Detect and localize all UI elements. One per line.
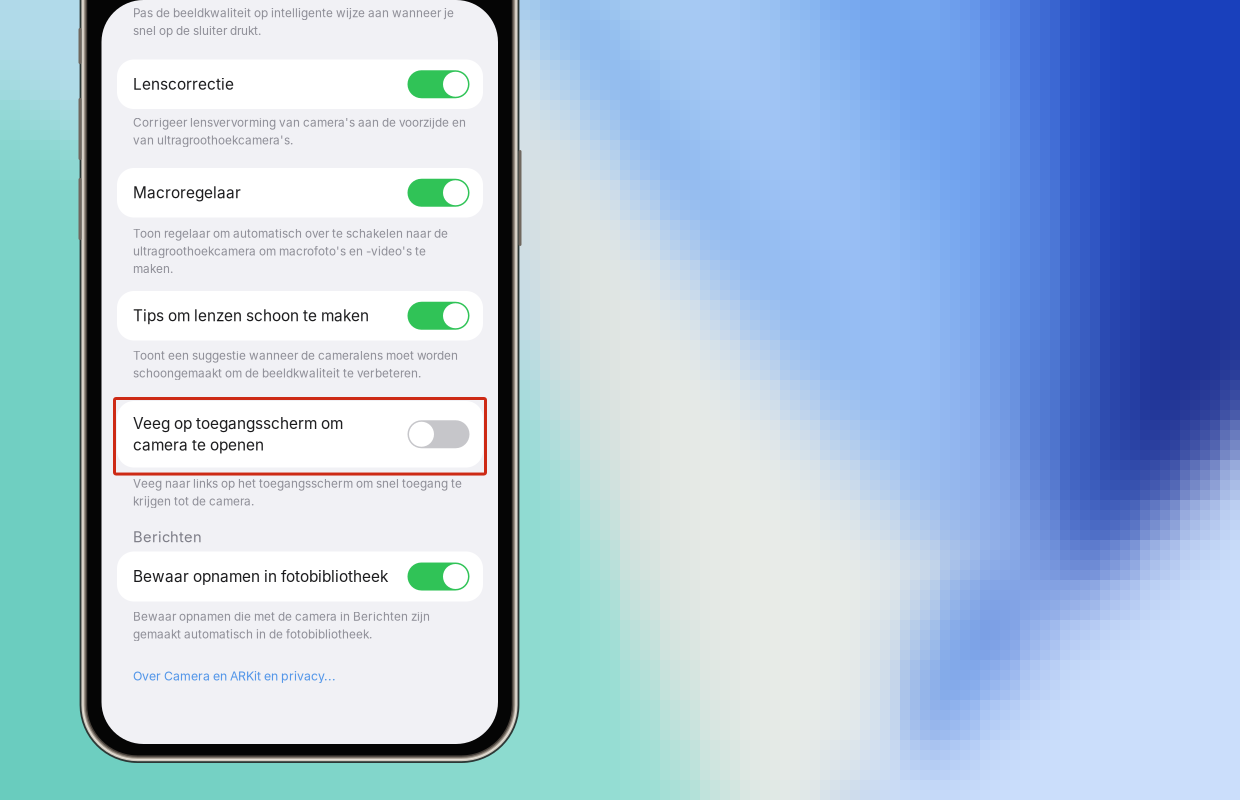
- staticText: snel op de sluiter drukt.: [133, 24, 261, 38]
- staticText: Pas de beeldkwaliteit op intelligente wi…: [133, 6, 454, 20]
- button[interactable]: Over Camera en ARKit en privacy...: [133, 668, 336, 683]
- staticText: Berichten: [133, 528, 202, 546]
- staticText: Over Camera en ARKit en privacy...: [133, 668, 336, 683]
- button[interactable]: Lenscorrectie: [117, 59, 483, 109]
- staticText: schoongemaakt om de beeldkwaliteit te ve…: [133, 366, 421, 380]
- staticText: Veeg naar links op het toegangsscherm om…: [133, 476, 462, 491]
- staticText: gemaakt automatisch in de fotobibliothee…: [133, 627, 372, 641]
- staticText: Corrigeer lensvervorming van camera's aa…: [133, 115, 466, 130]
- staticText: van ultragroothoekcamera's.: [133, 133, 293, 147]
- button[interactable]: Macroregelaar: [117, 168, 483, 217]
- staticText: Lenscorrectie: [133, 75, 234, 94]
- staticText: krijgen tot de camera.: [133, 494, 254, 508]
- staticText: Toon regelaar om automatisch over te sch…: [133, 226, 448, 241]
- staticText: Veeg op toegangsscherm om: [133, 414, 343, 433]
- staticText: Toont een suggestie wanneer de cameralen…: [133, 348, 458, 363]
- staticText: Bewaar opnamen die met de camera in Beri…: [133, 609, 430, 624]
- button[interactable]: Tips om lenzen schoon te maken: [117, 291, 483, 340]
- staticText: Tips om lenzen schoon te maken: [133, 306, 369, 325]
- button[interactable]: Veeg op toegangsscherm om: [117, 401, 483, 467]
- staticText: camera te openen: [133, 436, 264, 454]
- staticText: Macroregelaar: [133, 183, 241, 202]
- staticText: Bewaar opnamen in fotobibliotheek: [133, 567, 388, 586]
- staticText: ultragroothoekcamera om macrofoto's en -…: [133, 244, 426, 258]
- button[interactable]: Bewaar opnamen in fotobibliotheek: [117, 551, 483, 601]
- staticText: maken.: [133, 262, 173, 276]
